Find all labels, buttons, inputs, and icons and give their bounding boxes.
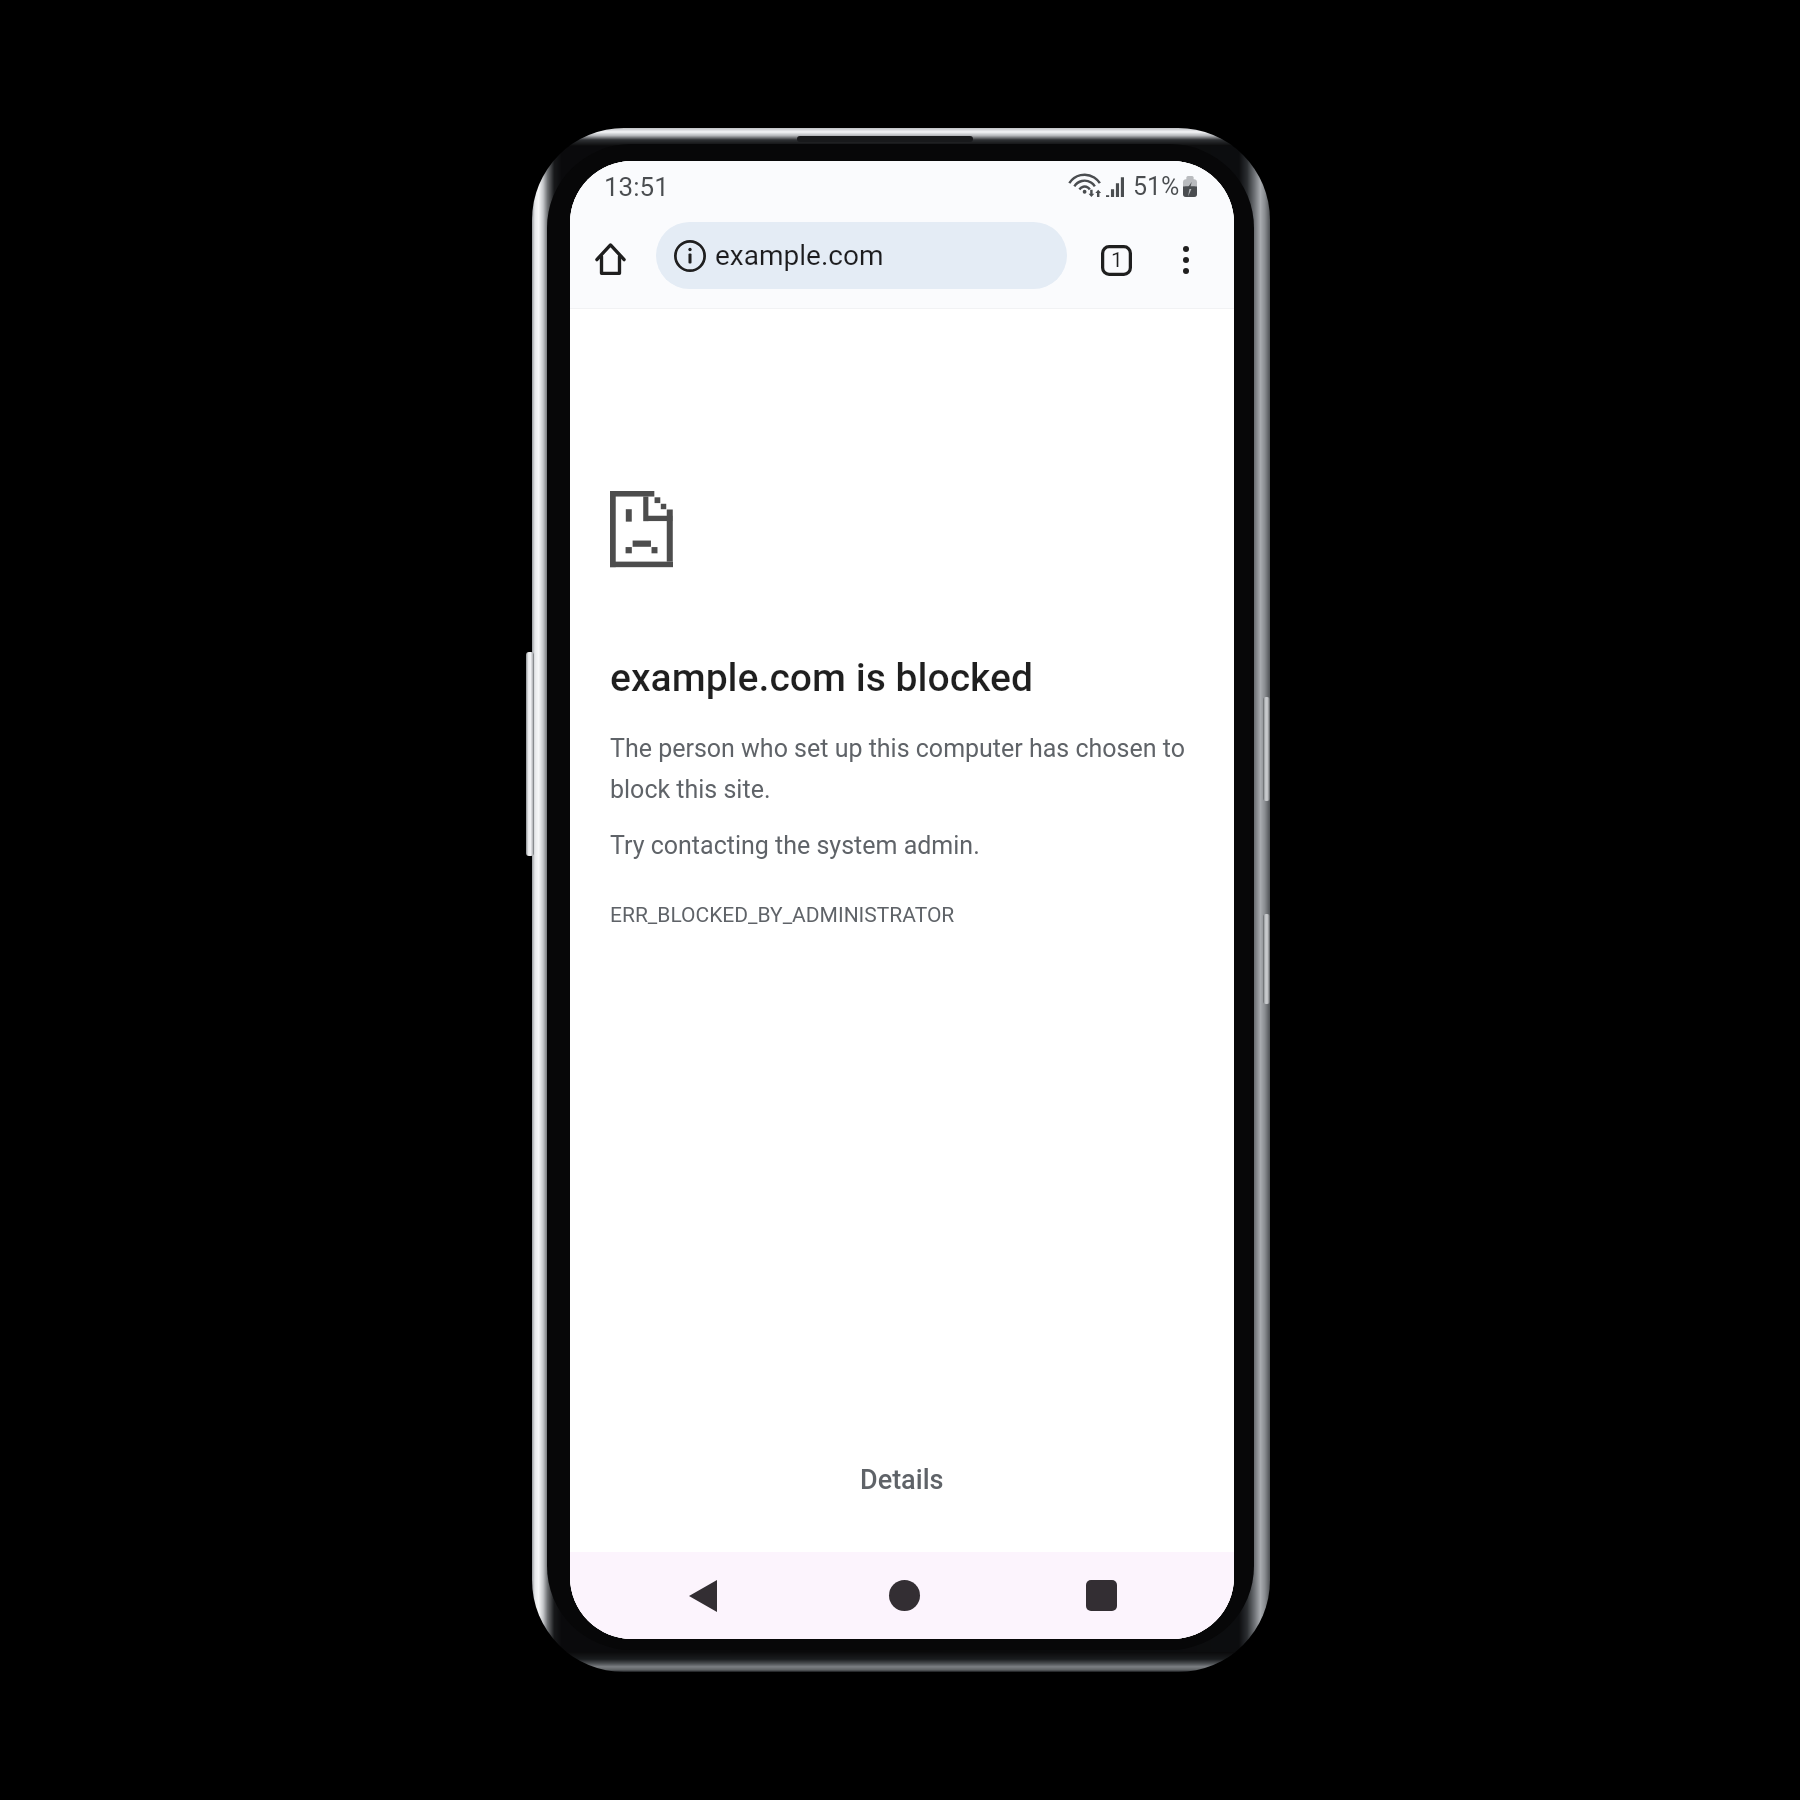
button[interactable]: Tabs (1085, 229, 1147, 291)
button[interactable]: Details (570, 1451, 1234, 1509)
staticText: 51% (1133, 172, 1180, 201)
staticText: example.com is blocked (610, 655, 1034, 701)
button[interactable]: Search or type URL (656, 222, 1067, 289)
staticText: 1 (1111, 248, 1123, 273)
button[interactable]: Recent apps (1059, 1552, 1143, 1639)
staticText: 13:51 (604, 172, 669, 202)
button[interactable]: Home (862, 1552, 946, 1639)
staticText: The person who set up this computer has … (610, 734, 1188, 804)
staticText: Details (860, 1464, 944, 1496)
button[interactable]: More options (1155, 229, 1217, 291)
staticText: example.com (715, 239, 884, 272)
staticText: Try contacting the system admin. (610, 831, 980, 860)
button[interactable]: Back (661, 1552, 745, 1639)
staticText: ERR_BLOCKED_BY_ADMINISTRATOR (610, 903, 955, 928)
button[interactable]: Home (578, 226, 643, 291)
